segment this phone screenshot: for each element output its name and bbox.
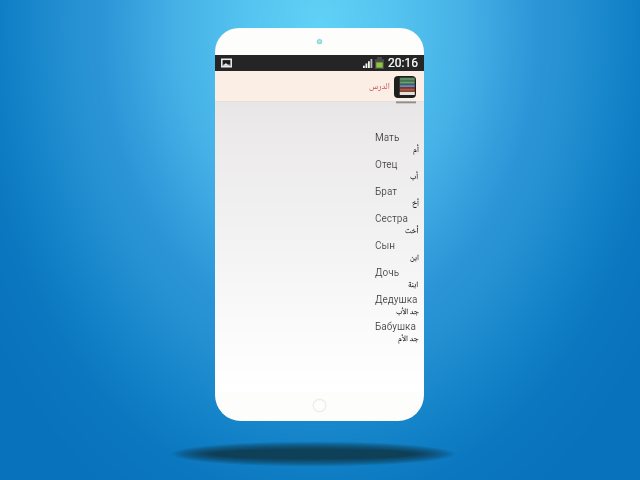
staticText: Сестра [375, 213, 408, 225]
staticText: الدرس [369, 79, 390, 94]
button[interactable]: Дочь [215, 268, 424, 295]
staticText: ابنة [408, 278, 419, 292]
button[interactable]: Lesson book [394, 76, 416, 98]
button[interactable]: Брат [215, 187, 424, 214]
staticText: Сын [375, 240, 396, 252]
button[interactable]: Сестра [215, 214, 424, 241]
staticText: Мать [375, 132, 400, 144]
staticText: Отец [375, 159, 398, 171]
staticText: ابن [410, 251, 419, 265]
staticText: Бабушка [375, 321, 416, 333]
button[interactable]: Дедушка [215, 295, 424, 322]
staticText: أخت [405, 224, 419, 238]
staticText: أب [410, 170, 419, 184]
staticText: جد الأب [396, 305, 419, 319]
staticText: Дочь [375, 267, 400, 279]
button[interactable]: Home [312, 398, 327, 413]
staticText: أخ [412, 197, 419, 211]
button[interactable]: Мать [215, 133, 424, 160]
button[interactable]: Бабушка [215, 322, 424, 349]
staticText: Брат [375, 186, 398, 198]
button[interactable]: Сын [215, 241, 424, 268]
staticText: 20:16 [388, 56, 418, 70]
staticText: أم [413, 143, 419, 157]
button[interactable]: Отец [215, 160, 424, 187]
staticText: Дедушка [375, 294, 418, 306]
staticText: جد الأم [398, 332, 419, 346]
